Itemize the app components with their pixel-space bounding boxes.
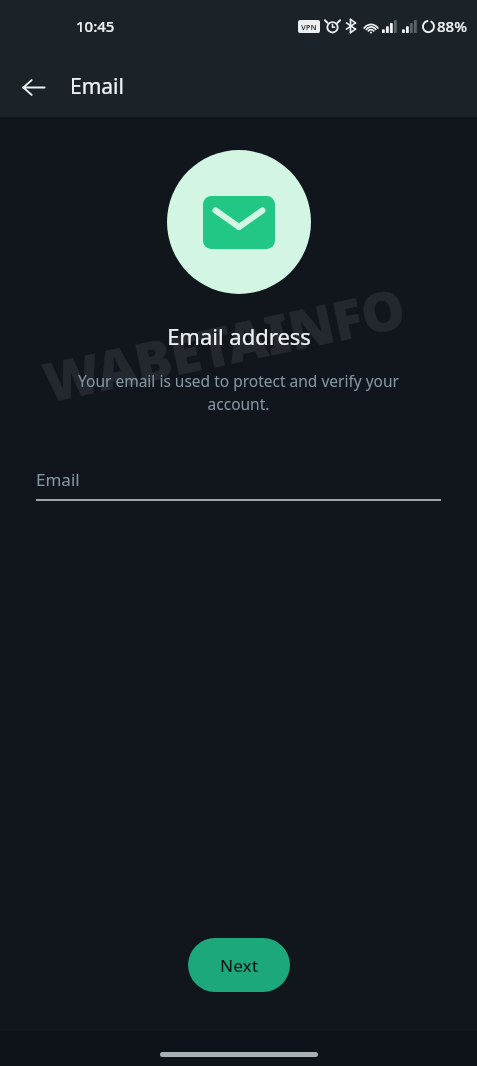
button[interactable]: Email [36,457,441,501]
button[interactable]: Next [188,938,290,992]
staticText: Email address [167,321,311,351]
staticText: 10:45 [76,16,115,36]
staticText: Your email is used to protect and verify… [50,370,427,415]
staticText: 88% [437,16,467,36]
staticText: Next [220,954,259,977]
staticText: WABETAINFO [36,270,412,418]
staticText: Email [36,468,80,491]
staticText: VPN [301,22,317,32]
staticText: Email [70,72,124,101]
button[interactable]: Back [10,64,56,110]
